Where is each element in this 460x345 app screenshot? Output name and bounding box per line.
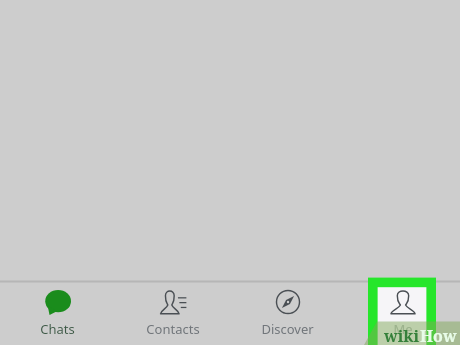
button[interactable]: Chats bbox=[0, 283, 115, 345]
staticText: wiki bbox=[384, 325, 420, 345]
staticText: Chats bbox=[40, 320, 75, 338]
other: Me bbox=[390, 289, 416, 315]
button[interactable]: Contacts bbox=[115, 283, 230, 345]
button[interactable]: Discover bbox=[230, 283, 345, 345]
other: Discover bbox=[275, 289, 301, 315]
staticText: How bbox=[420, 325, 457, 345]
other: Chats bbox=[45, 289, 71, 315]
other: Contacts bbox=[160, 289, 186, 315]
staticText: Me bbox=[393, 320, 413, 338]
button[interactable]: Me bbox=[345, 283, 460, 345]
staticText: Contacts bbox=[146, 320, 200, 338]
staticText: Discover bbox=[261, 320, 314, 338]
